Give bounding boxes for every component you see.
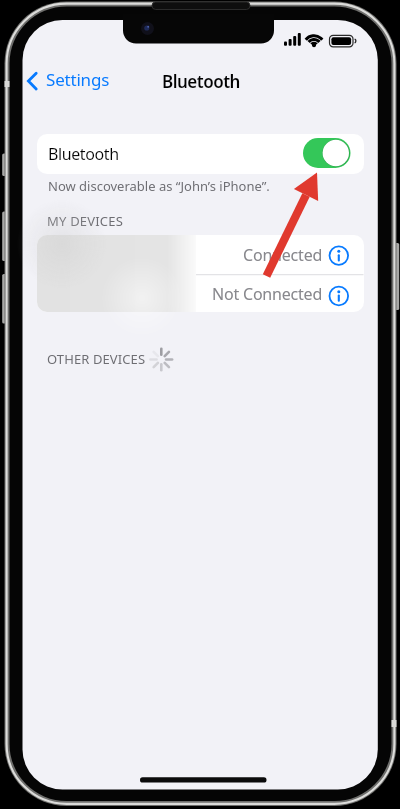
- staticText: Bluetooth: [48, 143, 119, 165]
- button[interactable]: Settings: [25, 67, 110, 91]
- button[interactable]: Not Connected: [37, 275, 364, 312]
- button[interactable]: Bluetooth: [37, 134, 364, 174]
- button[interactable]: Connected: [37, 235, 364, 275]
- staticText: Settings: [46, 68, 110, 91]
- staticText: Connected: [243, 244, 323, 266]
- staticText: Bluetooth: [162, 70, 240, 93]
- staticText: Not Connected: [212, 283, 323, 305]
- staticText: OTHER DEVICES: [47, 350, 146, 365]
- staticText: MY DEVICES: [47, 212, 124, 227]
- staticText: Now discoverable as “John’s iPhone”.: [48, 177, 270, 193]
